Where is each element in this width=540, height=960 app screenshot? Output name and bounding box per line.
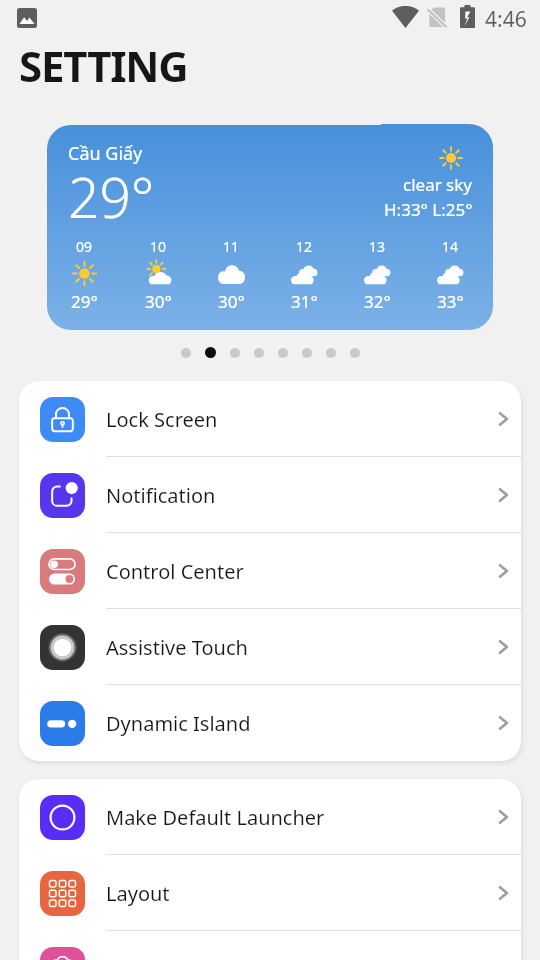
staticText: Assistive Touch <box>106 634 484 661</box>
staticText: 12 <box>296 237 313 256</box>
staticText: 29° <box>71 290 98 313</box>
staticText: 33° <box>437 290 464 313</box>
button[interactable]: Layout <box>19 855 521 931</box>
staticText: 31° <box>291 290 318 313</box>
staticText: 32° <box>364 290 391 313</box>
staticText: Cầu Giấy <box>68 141 143 166</box>
button[interactable]: Dynamic Island <box>19 685 521 761</box>
staticText: 09 <box>76 237 93 256</box>
staticText: Control Center <box>106 558 484 585</box>
button[interactable]: Assistive Touch <box>19 609 521 685</box>
staticText: 11 <box>223 237 240 256</box>
button[interactable]: Lock Screen <box>19 381 521 457</box>
staticText: Lock Screen <box>106 406 484 433</box>
staticText: 30° <box>218 290 245 313</box>
staticText: Layout <box>106 880 484 907</box>
staticText: 29° <box>68 159 155 234</box>
staticText: H:33° L:25° <box>384 198 473 221</box>
staticText: Notification <box>106 482 484 509</box>
staticText: clear sky <box>403 173 473 196</box>
staticText: 4:46 <box>485 5 527 34</box>
staticText: 13 <box>369 237 386 256</box>
button[interactable]: Make Default Launcher <box>19 779 521 855</box>
button[interactable]: Notification <box>19 457 521 533</box>
staticText: SETTING <box>19 37 188 94</box>
button[interactable]: Cầu Giấy <box>47 125 493 330</box>
button[interactable]: Control Center <box>19 533 521 609</box>
staticText: Make Default Launcher <box>106 804 484 831</box>
button[interactable]: Wallpaper <box>19 931 521 960</box>
other: Screenshot <box>17 8 37 28</box>
staticText: 10 <box>150 237 167 256</box>
staticText: 30° <box>145 290 172 313</box>
staticText: 14 <box>442 237 459 256</box>
staticText: Dynamic Island <box>106 710 484 737</box>
